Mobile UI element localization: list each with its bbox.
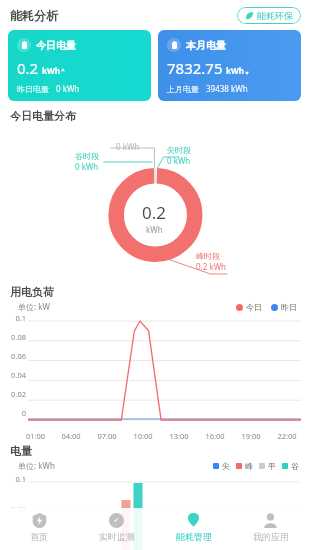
staticText: 7832.75 [167,58,223,78]
staticText: 尖时段 [167,145,191,155]
staticText: 22:00 [269,431,305,441]
staticText: 0.2 [17,58,39,78]
staticText: 能耗管理 [176,531,212,542]
other: 我的应用 [263,513,278,528]
staticText: 04:00 [53,431,89,441]
staticText: 单位: kW [18,301,50,312]
staticText: 0.1 [2,474,26,484]
staticText: 39438 kWh [206,83,248,94]
button[interactable]: 首页 [0,508,78,550]
staticText: 昨日 [281,302,297,312]
staticText: 0.06 [2,351,26,361]
staticText: 07:00 [89,431,125,441]
button[interactable]: 本月电量 [158,30,301,101]
staticText: 首页 [30,531,48,542]
button[interactable]: 今日电量 [8,30,151,101]
staticText: 今日 [246,302,262,312]
staticText: 0 kWh [75,161,99,172]
staticText: 16:00 [197,431,233,441]
staticText: 01:00 [18,431,53,441]
staticText: 本月电量 [186,39,226,52]
staticText: 19:00 [233,431,269,441]
staticText: 今日电量 [36,39,76,52]
staticText: 峰时段 [196,251,220,261]
other: 实时监测 [109,513,124,528]
staticText: 0.08 [2,332,26,342]
staticText: 0 kWh [56,83,80,94]
staticText: 实时监测 [99,531,135,542]
staticText: 峰 [245,461,253,471]
staticText: 单位: kWh [18,460,55,471]
button[interactable]: 能耗环保 [237,7,301,24]
staticText: 0 kWh [116,141,140,152]
staticText: 平 [268,461,276,471]
other: 能耗管理 [186,513,201,528]
staticText: 尖 [222,461,230,471]
staticText: kWh [42,65,60,76]
staticText: 今日电量分布 [10,109,76,123]
other: 首页 [32,513,47,528]
button[interactable]: 我的应用 [232,508,309,550]
button[interactable]: 实时监测 [78,508,155,550]
staticText: 上月电量 [167,84,199,94]
staticText: 0.1 [2,313,26,323]
staticText: kWh [226,65,244,76]
staticText: 0 [2,408,26,418]
staticText: 0.04 [2,370,26,380]
staticText: 0.02 [2,504,26,514]
staticText: 能耗环保 [257,10,293,21]
staticText: 谷 [291,461,299,471]
staticText: 0 kWh [167,155,191,166]
staticText: 谷时段 [75,151,99,161]
staticText: 电量 [10,444,32,458]
staticText: 0.2 kWh [196,261,227,272]
staticText: kWh [146,224,163,235]
staticText: 0.2 [142,201,167,224]
staticText: 用电负荷 [10,285,54,299]
staticText: 我的应用 [253,531,289,542]
staticText: 13:00 [161,431,197,441]
button[interactable]: 能耗管理 [155,508,232,550]
staticText: 昨日电量 [17,84,49,94]
staticText: 能耗分析 [10,8,58,23]
staticText: 0.02 [2,389,26,399]
staticText: 10:00 [125,431,161,441]
